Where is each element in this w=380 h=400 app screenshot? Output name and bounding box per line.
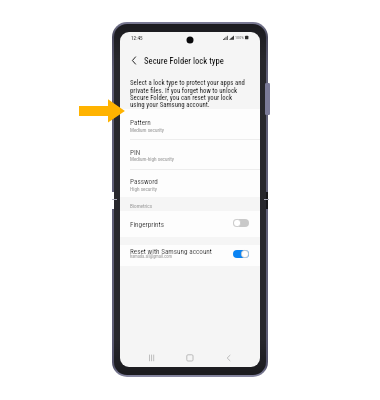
staticText: Medium-high security [130, 156, 174, 162]
staticText: Pattern [130, 118, 151, 126]
staticText: Biometrics [130, 203, 153, 209]
staticText: hamada.ali@gmail.com [130, 254, 172, 259]
button[interactable]: Navigate up [129, 55, 140, 66]
staticText: PIN [130, 148, 141, 156]
button[interactable]: Off [233, 219, 249, 227]
other: Front camera [186, 36, 194, 44]
staticText: Reset with Samsung account [130, 247, 212, 255]
staticText: 12:45 [131, 35, 143, 41]
staticText: Medium security [130, 127, 164, 133]
staticText: 100% [235, 35, 244, 40]
staticText: Password [130, 177, 158, 185]
button[interactable]: Recent apps [141, 348, 163, 367]
button[interactable]: Navigate up [120, 51, 260, 70]
staticText: Select a lock type to protect your apps … [130, 79, 247, 108]
staticText: Fingerprints [130, 220, 164, 228]
staticText: Secure Folder lock type [144, 56, 224, 66]
staticText: High security [130, 186, 157, 192]
button[interactable]: On [233, 250, 249, 258]
button[interactable]: Back [218, 348, 240, 367]
button[interactable]: Home [179, 348, 201, 367]
other: Pointer [79, 99, 125, 123]
